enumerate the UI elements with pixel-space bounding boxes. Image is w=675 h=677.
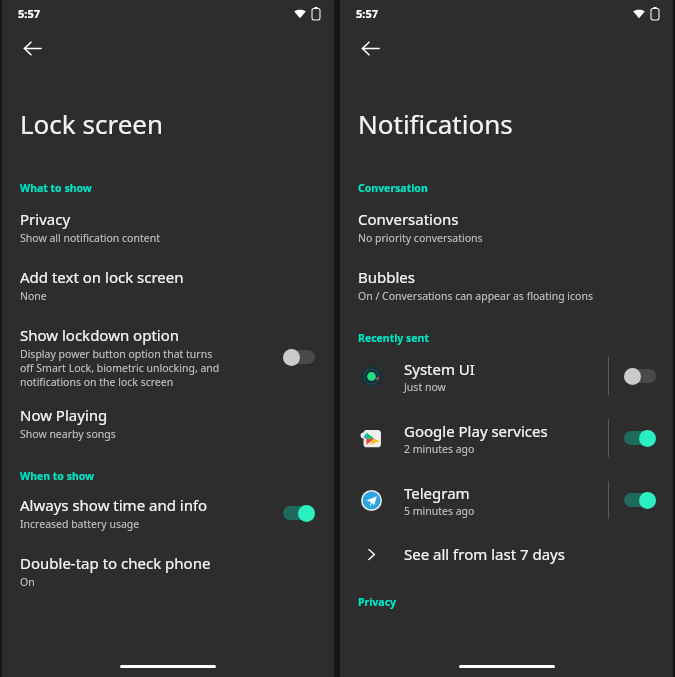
staticText: See all from last 7 days	[404, 544, 565, 564]
button[interactable]: Toggle on	[619, 487, 661, 513]
staticText: Conversations	[358, 209, 459, 229]
button[interactable]: Now Playing	[2, 391, 334, 443]
staticText: 5 minutes ago	[404, 504, 475, 518]
button[interactable]: Bubbles	[340, 247, 673, 305]
button[interactable]: Back	[350, 28, 390, 68]
staticText: Show all notification content	[20, 231, 160, 245]
staticText: Privacy	[20, 209, 71, 229]
staticText: Just now	[404, 380, 446, 394]
staticText: Increased battery usage	[20, 517, 140, 531]
staticText: Conversation	[358, 181, 428, 195]
button[interactable]: Double-tap to check phone	[2, 533, 334, 591]
button[interactable]: Telegram	[340, 469, 673, 531]
staticText: No priority conversations	[358, 231, 483, 245]
staticText: When to show	[20, 469, 95, 483]
staticText: System UI	[404, 359, 475, 379]
staticText: Show nearby songs	[20, 427, 116, 441]
staticText: Telegram	[404, 483, 470, 503]
staticText: 5:57	[356, 6, 378, 21]
button[interactable]: System UI	[340, 345, 673, 407]
button[interactable]: Toggle on	[278, 500, 320, 526]
button[interactable]: Privacy	[2, 195, 334, 247]
staticText: Always show time and info	[20, 495, 208, 515]
button[interactable]: Toggle off	[278, 344, 320, 370]
staticText: Notifications	[358, 106, 513, 141]
staticText: Google Play services	[404, 421, 548, 441]
staticText: Display power button option that turns o…	[20, 347, 220, 389]
staticText: None	[20, 289, 47, 303]
staticText: 2 minutes ago	[404, 442, 475, 456]
staticText: Recently sent	[358, 331, 430, 345]
staticText: Add text on lock screen	[20, 267, 184, 287]
staticText: Show lockdown option	[20, 325, 180, 345]
button[interactable]: Back	[12, 28, 52, 68]
button[interactable]: Conversations	[340, 195, 673, 247]
button[interactable]: Add text on lock screen	[2, 247, 334, 305]
button[interactable]: Always show time and info	[2, 483, 334, 533]
staticText: Bubbles	[358, 267, 415, 287]
staticText: Double-tap to check phone	[20, 553, 211, 573]
staticText: What to show	[20, 181, 92, 195]
staticText: Lock screen	[20, 106, 164, 141]
staticText: On / Conversations can appear as floatin…	[358, 289, 593, 303]
staticText: On	[20, 575, 35, 589]
staticText: Privacy	[358, 595, 397, 609]
button[interactable]: See all from last 7 days	[340, 531, 673, 577]
staticText: 5:57	[18, 6, 40, 21]
button[interactable]: Show lockdown option	[2, 305, 334, 391]
button[interactable]: Google Play services	[340, 407, 673, 469]
button[interactable]: Toggle off	[619, 363, 661, 389]
button[interactable]: Toggle on	[619, 425, 661, 451]
staticText: Now Playing	[20, 405, 108, 425]
